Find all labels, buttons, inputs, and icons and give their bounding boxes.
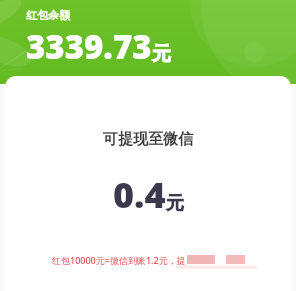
staticText: 0.4 xyxy=(113,170,166,219)
staticText: 可提现至微信 xyxy=(103,130,193,149)
staticText: 元 xyxy=(152,42,171,66)
staticText: 元 xyxy=(166,192,184,215)
staticText: 红包余额 xyxy=(26,8,70,22)
button[interactable]: 可提现至微信 xyxy=(5,76,291,291)
staticText: 3339.73 xyxy=(26,24,152,69)
staticText: 红包10000元=微信到账1.2元，提 xyxy=(52,254,186,266)
